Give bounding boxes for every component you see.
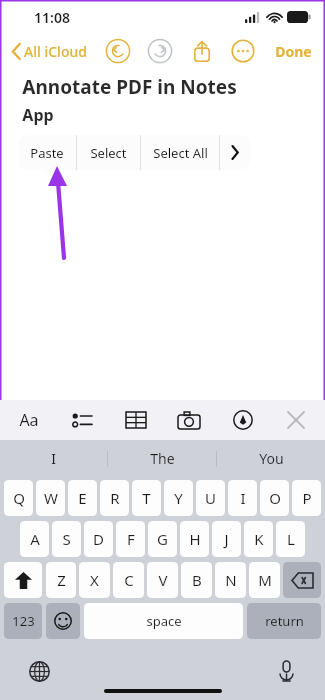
button[interactable]: Undo [105,38,131,64]
staticText: H [189,529,201,549]
staticText: R [110,488,120,508]
button[interactable]: D [84,521,113,557]
staticText: You [259,449,284,468]
button[interactable]: I [228,480,257,516]
staticText: A [30,529,40,549]
button[interactable]: Done [272,42,315,61]
button[interactable]: P [292,480,321,516]
staticText: The [150,449,175,468]
button[interactable]: 123 [4,603,42,639]
button[interactable]: Redo [147,38,173,64]
button[interactable]: V [147,562,178,598]
staticText: L [287,529,295,549]
staticText: Q [13,488,25,508]
button[interactable]: Q [4,480,33,516]
staticText: I [51,449,56,468]
button[interactable]: J [212,521,241,557]
button[interactable]: Aa [14,405,44,435]
staticText: M [258,570,272,590]
button[interactable]: B [181,562,212,598]
button[interactable]: U [196,480,225,516]
button[interactable]: Shift [4,562,42,598]
button[interactable]: F [116,521,145,557]
staticText: F [127,529,135,549]
staticText: G [157,529,168,549]
button[interactable]: Camera [174,405,204,435]
button[interactable]: The [108,440,216,477]
staticText: Paste [30,144,64,162]
button[interactable]: Select [77,135,140,170]
staticText: X [90,570,99,590]
button[interactable]: M [249,562,280,598]
staticText: Aa [19,409,39,431]
button[interactable]: Select All [141,135,219,170]
staticText: App [22,104,54,126]
button[interactable]: Dictate [271,656,301,686]
button[interactable]: Y [164,480,193,516]
button[interactable]: L [276,521,305,557]
button[interactable]: return [247,603,321,639]
staticText: V [158,570,168,590]
staticText: return [265,612,304,630]
button[interactable]: Checklist [67,405,97,435]
staticText: B [192,570,202,590]
staticText: Annotate PDF in Notes [22,74,237,100]
button[interactable]: More options [220,135,250,170]
button[interactable]: W [36,480,65,516]
staticText: N [225,570,237,590]
staticText: Y [174,488,183,508]
button[interactable]: Share [190,39,214,63]
button[interactable]: Close [281,405,311,435]
button[interactable]: X [79,562,110,598]
button[interactable]: O [260,480,289,516]
button[interactable]: space [84,603,243,639]
staticText: P [302,488,312,508]
staticText: Select [90,144,127,162]
button[interactable]: C [113,562,144,598]
button[interactable]: Paste [18,135,76,170]
staticText: K [254,529,264,549]
button[interactable]: R [100,480,129,516]
staticText: U [205,488,216,508]
staticText: W [44,488,58,508]
staticText: I [240,488,246,508]
button[interactable]: S [52,521,81,557]
button[interactable]: K [244,521,273,557]
button[interactable]: A [20,521,49,557]
button[interactable]: G [148,521,177,557]
staticText: E [78,488,87,508]
button[interactable]: N [215,562,246,598]
button[interactable]: All iCloud [10,42,89,61]
staticText: Done [275,42,312,61]
staticText: S [62,529,71,549]
staticText: O [269,488,281,508]
staticText: C [124,570,134,590]
staticText: T [142,488,151,508]
button[interactable]: E [68,480,97,516]
staticText: 123 [12,612,35,630]
button[interactable]: You [217,440,325,477]
staticText: All iCloud [24,42,87,61]
button[interactable]: Table [121,405,151,435]
button[interactable]: Z [46,562,76,598]
button[interactable]: More [231,39,255,63]
button[interactable]: Emoji [46,603,80,639]
button[interactable]: Change keyboard [24,656,54,686]
button[interactable]: Markup [228,405,258,435]
staticText: space [146,612,182,630]
staticText: J [224,529,229,549]
button[interactable]: Backspace [283,562,321,598]
staticText: Z [57,570,66,590]
staticText: D [93,529,104,549]
staticText: Select All [153,144,208,162]
button[interactable]: T [132,480,161,516]
button[interactable]: H [180,521,209,557]
staticText: 11:08 [34,8,70,27]
button[interactable]: I [0,440,107,477]
